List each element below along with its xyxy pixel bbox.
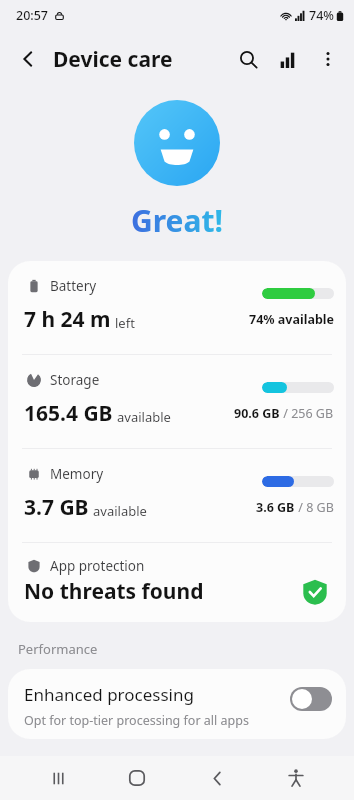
staticText: App protection: [50, 557, 145, 575]
staticText: 90.6 GB: [234, 405, 280, 422]
staticText: Performance: [18, 640, 98, 658]
staticText: available: [117, 408, 171, 426]
button[interactable]: Battery: [8, 261, 346, 354]
staticText: 3.6 GB: [256, 499, 295, 516]
staticText: 74% available: [249, 311, 334, 328]
staticText: No threats found: [24, 577, 204, 606]
staticText: 74%: [309, 7, 334, 24]
button[interactable]: Back: [8, 39, 48, 79]
button[interactable]: Storage: [8, 355, 346, 448]
staticText: Enhanced processing: [24, 683, 194, 706]
button[interactable]: Back: [195, 756, 239, 800]
button[interactable]: Statistics: [268, 39, 308, 79]
staticText: Storage: [50, 371, 100, 389]
staticText: available: [93, 502, 147, 520]
staticText: 7 h 24 m: [24, 305, 111, 334]
button[interactable]: Memory: [8, 449, 346, 542]
staticText: Battery: [50, 277, 97, 295]
staticText: Opt for top-tier processing for all apps: [24, 712, 249, 729]
staticText: Memory: [50, 465, 104, 483]
button[interactable]: Recent apps: [36, 756, 80, 800]
staticText: / 8 GB: [295, 499, 334, 516]
button[interactable]: Home: [115, 756, 159, 800]
button[interactable]: More options: [308, 39, 348, 79]
button[interactable]: Search: [228, 39, 268, 79]
button[interactable]: App protection: [8, 543, 346, 622]
staticText: 3.7 GB: [24, 493, 89, 522]
staticText: Great!: [131, 200, 223, 241]
staticText: left: [115, 314, 135, 332]
staticText: Device care: [53, 45, 173, 74]
button[interactable]: Enhanced processing: [8, 669, 346, 739]
staticText: 20:57: [16, 7, 49, 24]
button[interactable]: Accessibility: [274, 756, 318, 800]
staticText: / 256 GB: [280, 405, 334, 422]
staticText: 165.4 GB: [24, 399, 113, 428]
